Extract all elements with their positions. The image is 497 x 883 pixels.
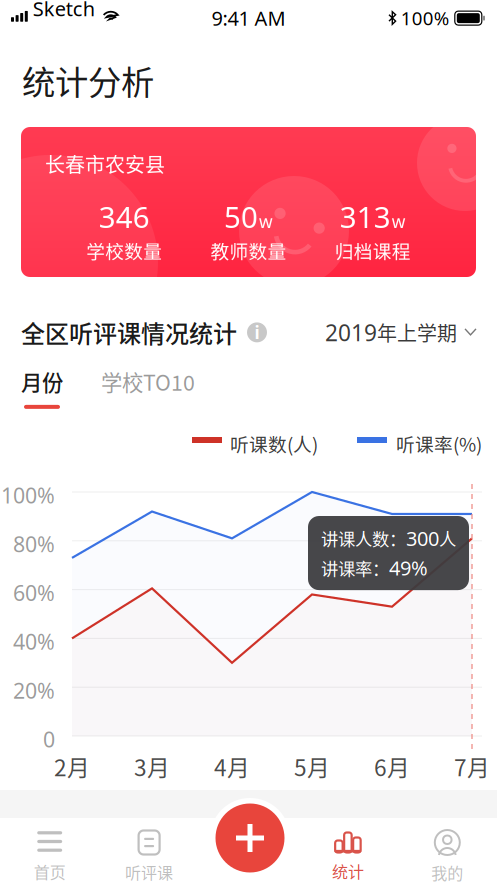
staticText: 100% — [401, 6, 450, 30]
staticText: 0 — [43, 725, 55, 753]
staticText: 全区听评课情况统计 — [21, 315, 237, 350]
staticText: 20% — [13, 676, 55, 704]
button[interactable]: 首页 — [0, 831, 99, 883]
staticText: 归档课程 — [335, 237, 411, 264]
staticText: 学校数量 — [86, 237, 162, 264]
staticText: 听评课 — [125, 860, 173, 883]
staticText: Sketch — [33, 0, 95, 22]
staticText: 听课率(%) — [396, 430, 482, 457]
staticText: 100% — [1, 481, 55, 509]
staticText: 月份 — [21, 366, 63, 397]
button[interactable]: 月份 — [21, 366, 63, 409]
staticText: 人 — [439, 526, 456, 551]
button[interactable]: 统计 — [298, 831, 398, 883]
staticText: 346 — [99, 197, 150, 236]
button[interactable]: Add — [210, 798, 290, 878]
staticText: 听课数(人) — [230, 430, 318, 457]
staticText: 讲课率： — [321, 555, 389, 580]
staticText: 4月 — [214, 750, 250, 783]
staticText: 6月 — [374, 750, 410, 783]
staticText: 49% — [389, 555, 428, 581]
staticText: 教师数量 — [210, 237, 286, 264]
staticText: 50 — [224, 197, 258, 236]
staticText: 9:41 AM — [211, 5, 285, 31]
staticText: w — [392, 210, 406, 233]
button[interactable]: 听评课 — [99, 830, 199, 883]
staticText: 300 — [406, 525, 439, 552]
staticText: 长春市农安县 — [45, 149, 165, 178]
staticText: i — [254, 321, 259, 344]
staticText: 学校TO10 — [101, 366, 195, 397]
staticText: 统计 — [332, 859, 364, 883]
staticText: 2月 — [54, 750, 90, 783]
staticText: 2019 — [325, 317, 377, 347]
staticText: 40% — [13, 627, 55, 656]
staticText: 统计分析 — [22, 56, 154, 104]
staticText: 80% — [13, 530, 55, 558]
staticText: 我的 — [431, 861, 463, 883]
staticText: 3月 — [134, 750, 170, 783]
button[interactable]: 学校TO10 — [101, 366, 195, 409]
staticText: 7月 — [454, 750, 490, 783]
staticText: 5月 — [294, 750, 330, 783]
staticText: 首页 — [34, 860, 66, 883]
staticText: 313 — [340, 197, 391, 236]
button[interactable]: 我的 — [398, 830, 497, 883]
button[interactable]: 2019 — [325, 317, 476, 347]
staticText: 60% — [13, 579, 55, 607]
staticText: w — [259, 210, 273, 233]
staticText: 讲课人数： — [321, 526, 406, 551]
staticText: 年上学期 — [377, 318, 457, 347]
